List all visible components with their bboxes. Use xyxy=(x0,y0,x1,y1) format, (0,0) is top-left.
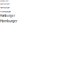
staticText: Hamburger xyxy=(0,10,11,13)
staticText: Hamburger xyxy=(0,14,15,18)
staticText: Hamburger xyxy=(0,6,10,9)
staticText: Hamburger xyxy=(0,19,17,23)
staticText: Hamburger xyxy=(0,0,9,2)
staticText: Hamburger xyxy=(0,3,10,5)
